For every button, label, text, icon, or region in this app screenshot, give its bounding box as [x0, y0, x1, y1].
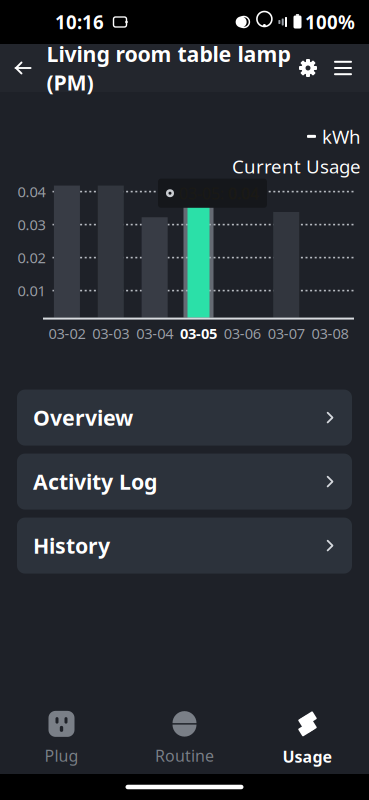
staticText: Activity Log: [33, 467, 157, 496]
staticText: 03-02: [48, 324, 85, 343]
staticText: 03-08: [312, 324, 349, 343]
staticText: 0.01: [17, 281, 45, 300]
staticText: 03-06: [224, 324, 261, 343]
staticText: 0.02: [17, 248, 45, 267]
staticText: Plug: [44, 745, 78, 766]
staticText: 03-04: [136, 324, 173, 343]
staticText: 10:16: [55, 10, 104, 34]
button[interactable]: Menu: [325, 44, 361, 92]
staticText: 100%: [305, 10, 355, 34]
staticText: 03-07: [268, 324, 305, 343]
staticText: Current Usage: [232, 154, 361, 179]
button[interactable]: Back: [0, 44, 46, 92]
staticText: 0.04: [17, 182, 45, 201]
staticText: Routine: [155, 745, 214, 766]
staticText: Overview: [33, 403, 133, 432]
button[interactable]: Overview: [17, 390, 352, 446]
button[interactable]: Settings: [291, 44, 325, 92]
staticText: 03-05: [180, 324, 217, 343]
staticText: Living room table lamp (PM): [46, 40, 290, 96]
staticText: History: [33, 531, 110, 560]
button[interactable]: History: [17, 518, 352, 574]
button[interactable]: Routine: [123, 707, 246, 769]
button[interactable]: Usage: [246, 707, 369, 769]
button[interactable]: Activity Log: [17, 454, 352, 510]
staticText: Usage: [282, 746, 332, 767]
staticText: kWh: [322, 124, 361, 149]
staticText: 0.03: [17, 215, 45, 234]
button[interactable]: Plug: [0, 707, 123, 769]
staticText: 03-03: [92, 324, 129, 343]
